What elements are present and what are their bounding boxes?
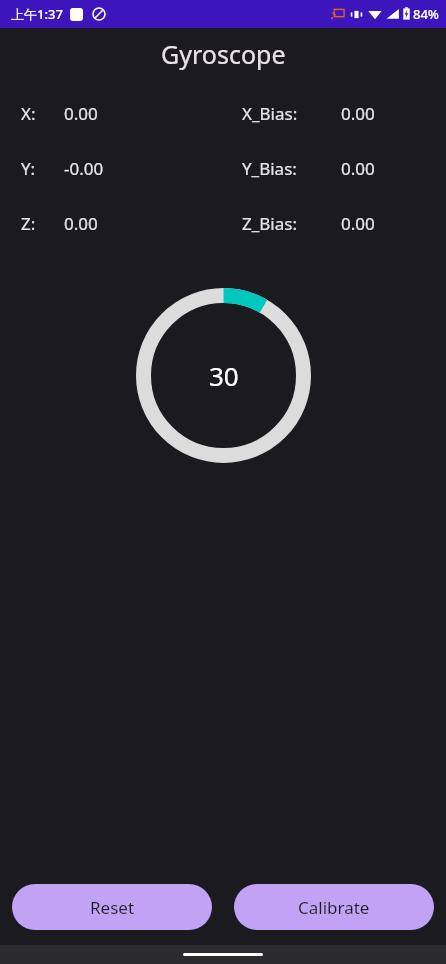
staticText: Z_Bias: — [242, 212, 297, 235]
staticText: 0.00 — [64, 212, 98, 235]
staticText: Calibrate — [298, 896, 370, 919]
staticText: -0.00 — [64, 157, 104, 180]
staticText: Z: — [21, 212, 36, 235]
staticText: 0.00 — [64, 102, 98, 125]
staticText: Gyroscope — [161, 37, 286, 71]
staticText: 上午1:37 — [11, 5, 63, 23]
button[interactable]: Reset — [12, 884, 212, 930]
staticText: 84% — [413, 5, 439, 23]
staticText: X_Bias: — [242, 102, 298, 125]
staticText: Y_Bias: — [242, 157, 297, 180]
staticText: Y: — [21, 157, 36, 180]
staticText: 30 — [209, 358, 239, 393]
staticText: 0.00 — [341, 212, 375, 235]
staticText: 0.00 — [341, 102, 375, 125]
button[interactable]: Calibrate — [234, 884, 434, 930]
staticText: X: — [21, 102, 36, 125]
staticText: Reset — [90, 896, 135, 919]
staticText: 0.00 — [341, 157, 375, 180]
